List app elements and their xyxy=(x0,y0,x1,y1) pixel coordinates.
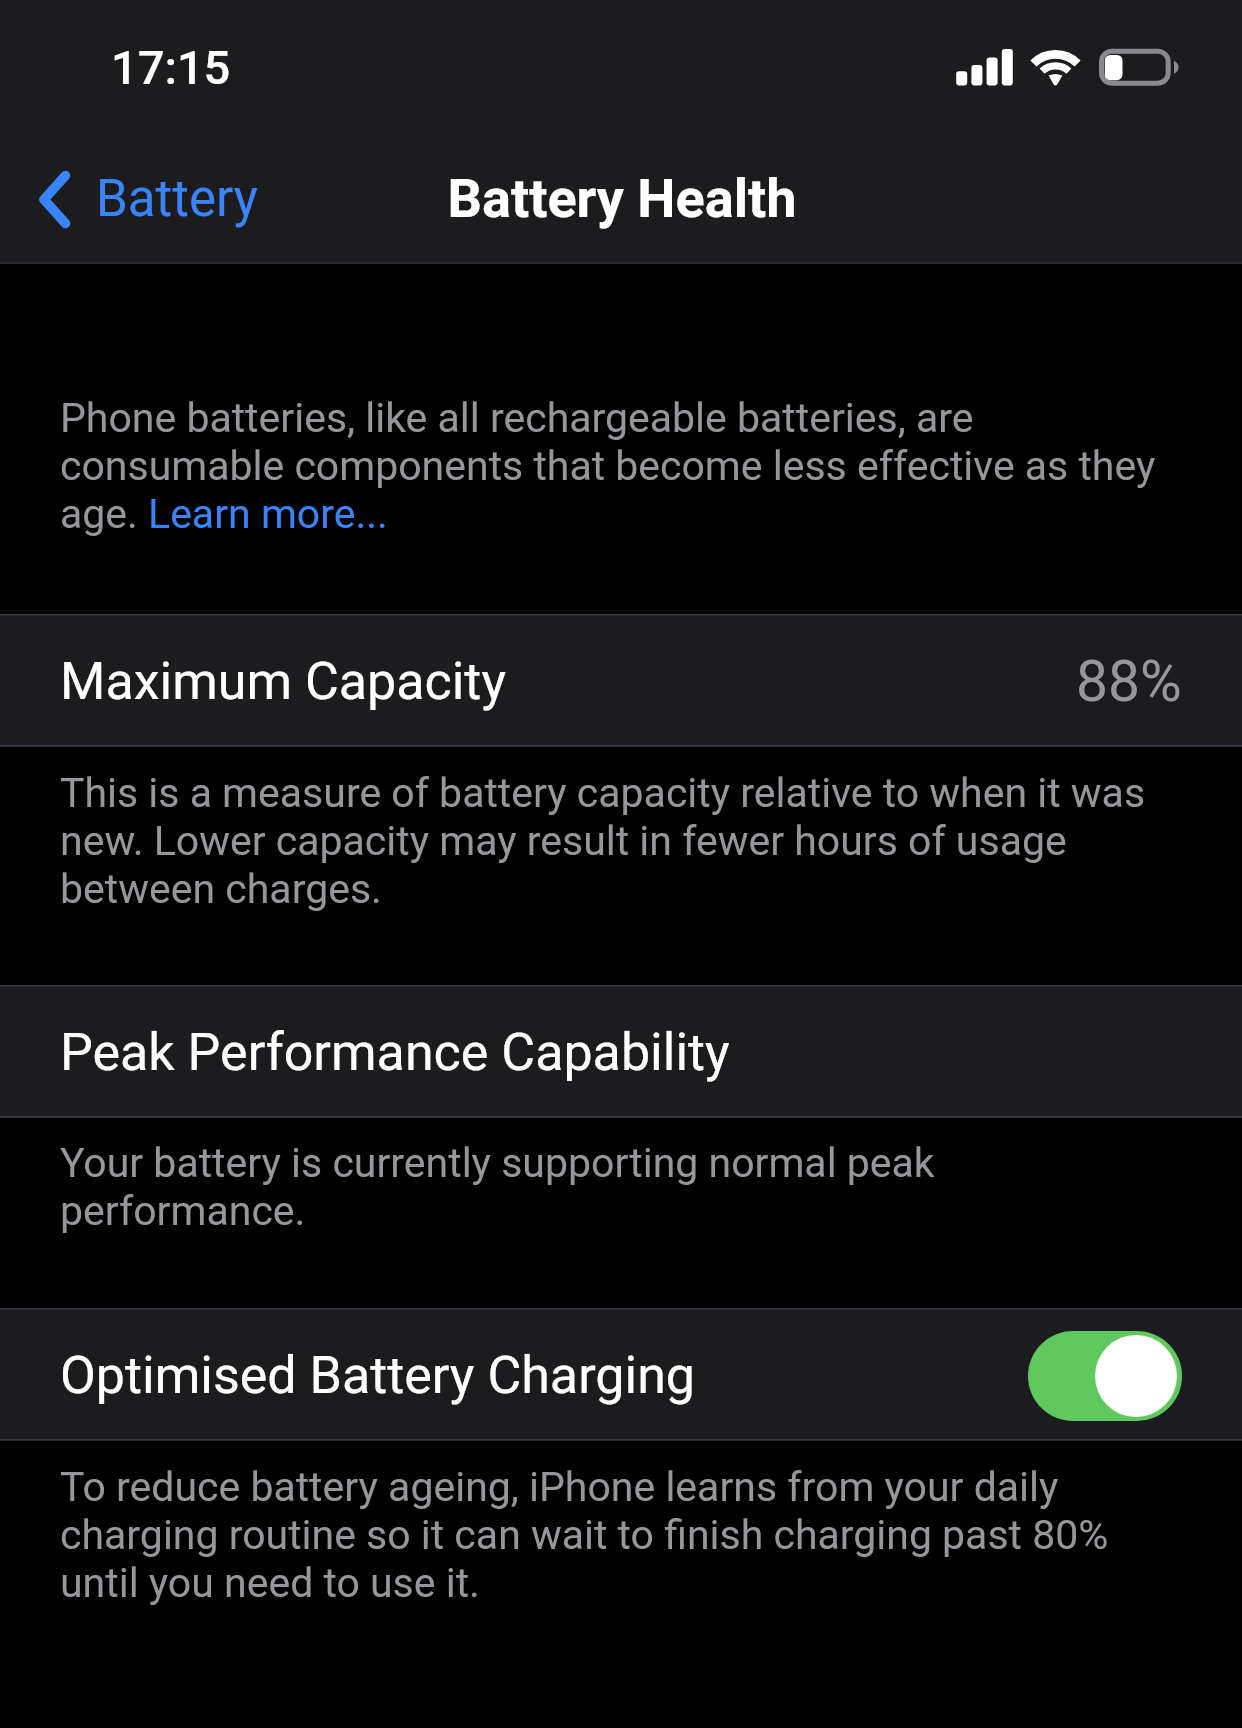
button[interactable]: Maximum Capacity xyxy=(0,616,1242,745)
staticText: Battery Health xyxy=(1,167,1242,230)
button[interactable]: Battery xyxy=(24,157,272,241)
button[interactable]: Optimised Battery Charging xyxy=(0,1310,1242,1439)
staticText: Phone batteries, like all rechargeable b… xyxy=(60,394,1182,538)
staticText: To reduce battery ageing, iPhone learns … xyxy=(60,1463,1182,1607)
staticText: Optimised Battery Charging xyxy=(60,1345,696,1406)
button[interactable]: Optimised Battery Charging xyxy=(1028,1331,1182,1421)
staticText: This is a measure of battery capacity re… xyxy=(60,769,1182,913)
staticText: 17:15 xyxy=(111,40,231,95)
staticText: Peak Performance Capability xyxy=(60,1022,730,1083)
staticText: Battery xyxy=(96,169,258,229)
staticText: Maximum Capacity xyxy=(60,651,506,712)
staticText: 88% xyxy=(1076,648,1182,715)
button[interactable]: Peak Performance Capability xyxy=(0,987,1242,1116)
staticText: Your battery is currently supporting nor… xyxy=(60,1139,1182,1235)
